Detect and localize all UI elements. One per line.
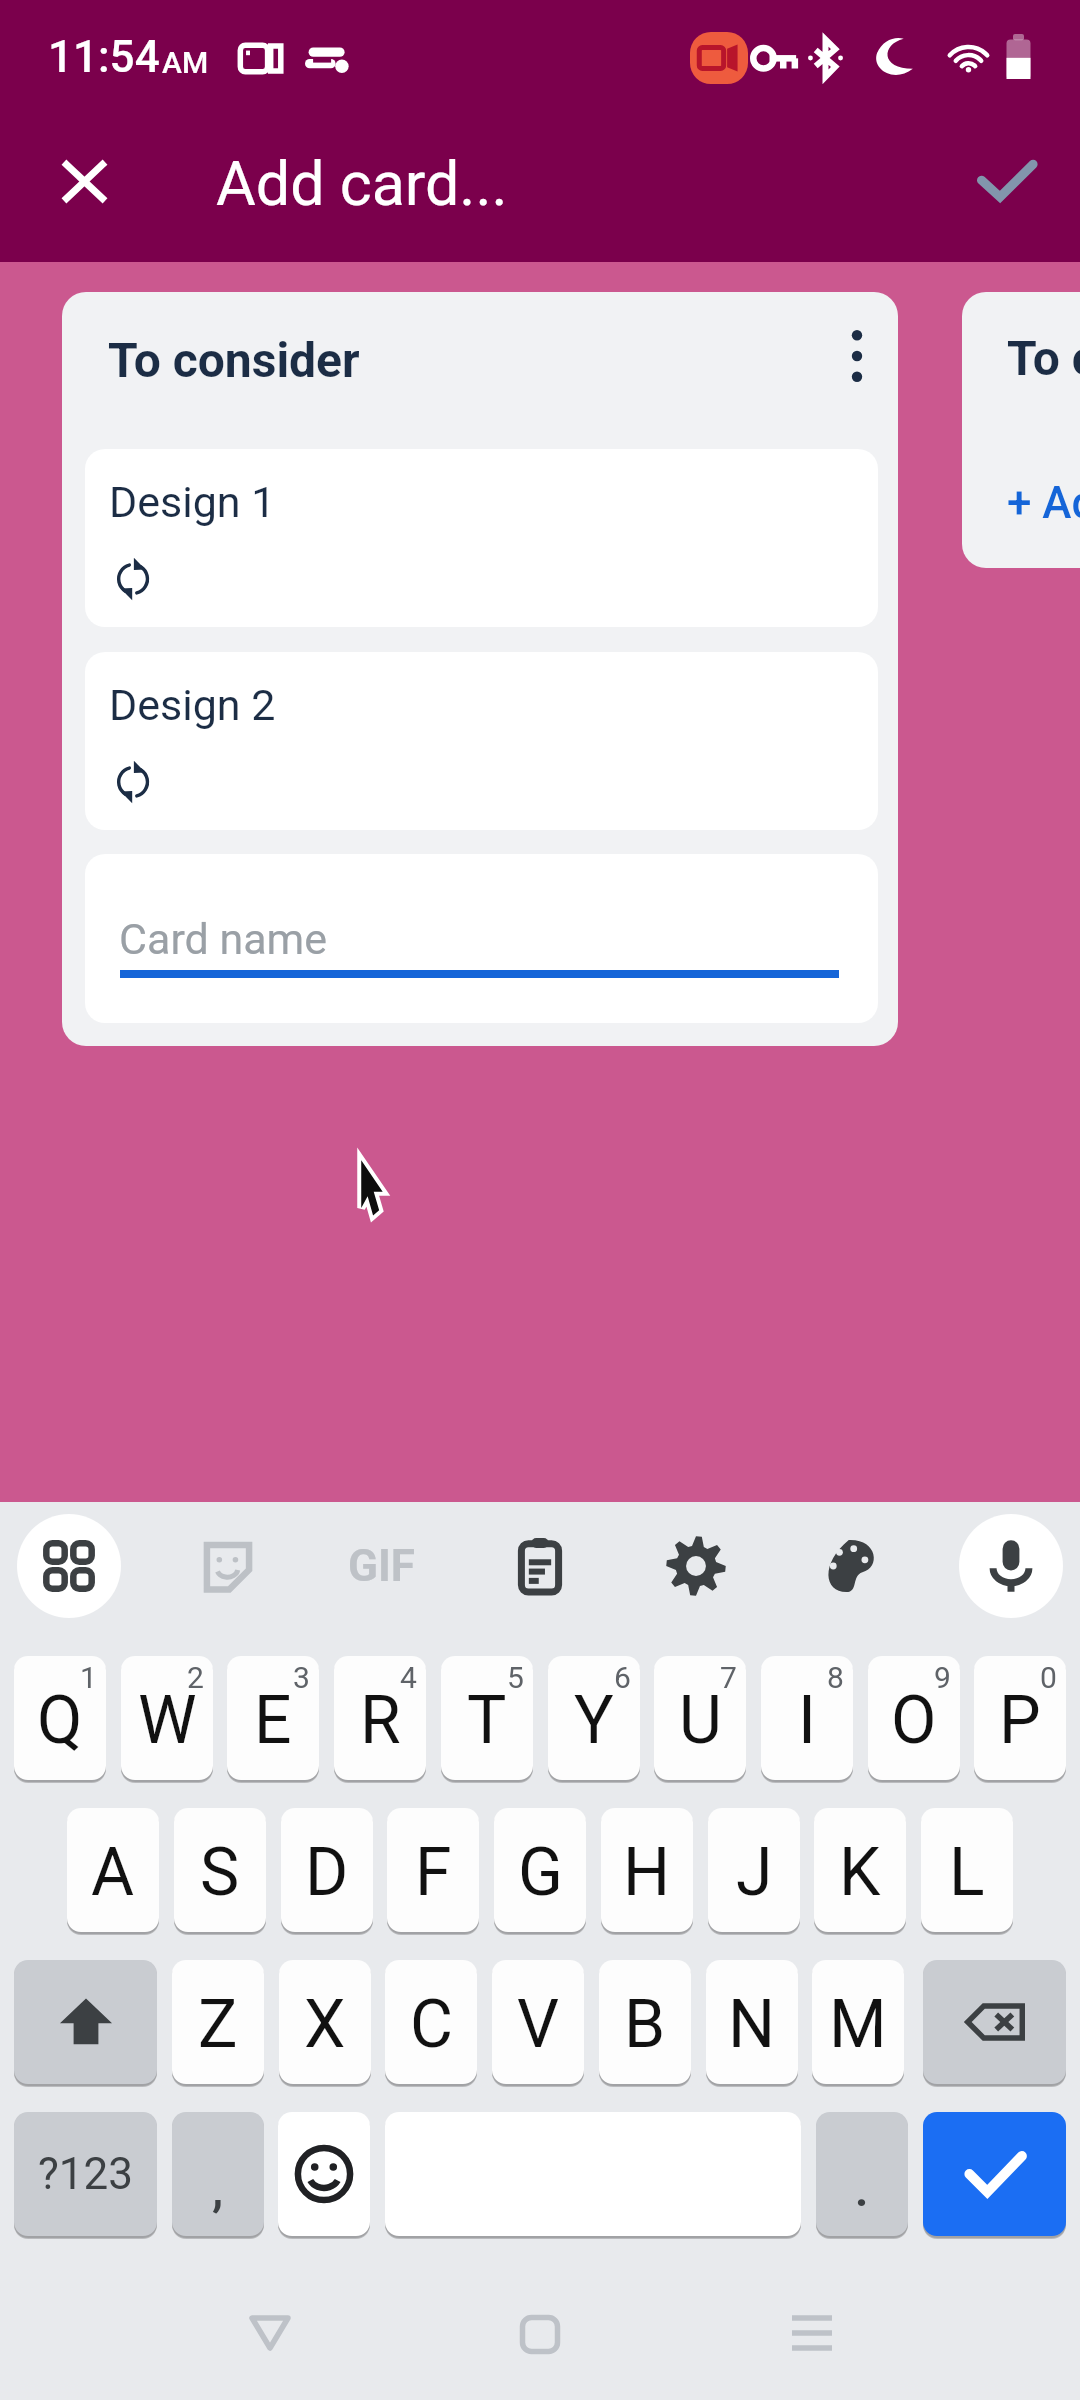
button[interactable]: Stickers	[158, 1514, 298, 1618]
staticText: C	[410, 1986, 453, 2063]
staticText: U	[679, 1682, 722, 1759]
staticText: + Add card	[1007, 477, 1080, 529]
staticText: J	[736, 1834, 773, 1911]
button[interactable]: S	[174, 1808, 266, 1932]
staticText: H	[623, 1834, 671, 1911]
staticText: 6	[614, 1660, 631, 1695]
staticText: ,	[212, 2163, 224, 2217]
staticText: X	[304, 1986, 346, 2063]
button[interactable]: Recents	[722, 2276, 902, 2390]
button[interactable]: T	[441, 1656, 533, 1780]
staticText: F	[415, 1834, 452, 1911]
button[interactable]: G	[494, 1808, 586, 1932]
button[interactable]: C	[385, 1960, 477, 2084]
button[interactable]: Z	[172, 1960, 264, 2084]
button[interactable]: D	[281, 1808, 373, 1932]
button[interactable]: Design 2	[85, 652, 878, 830]
staticText: K	[839, 1834, 881, 1911]
button[interactable]: K	[814, 1808, 906, 1932]
staticText: 11:54	[48, 31, 160, 83]
button[interactable]: Enter	[923, 2112, 1066, 2236]
staticText: Q	[37, 1682, 83, 1759]
button[interactable]: W	[121, 1656, 213, 1780]
button[interactable]: E	[227, 1656, 319, 1780]
button[interactable]: H	[601, 1808, 693, 1932]
staticText: 7	[720, 1660, 737, 1695]
staticText: L	[949, 1834, 985, 1911]
button[interactable]: Voice input	[959, 1514, 1063, 1618]
staticText: Y	[574, 1682, 614, 1759]
button[interactable]: Y	[548, 1656, 640, 1780]
staticText: 8	[827, 1660, 844, 1695]
staticText: E	[254, 1682, 292, 1759]
button[interactable]: Emoji	[278, 2112, 370, 2236]
staticText: W	[138, 1682, 197, 1759]
button[interactable]: Settings	[626, 1514, 766, 1618]
button[interactable]: R	[334, 1656, 426, 1780]
staticText: ?123	[38, 2148, 133, 2200]
staticText: Design 1	[109, 477, 276, 527]
button[interactable]: More options	[816, 315, 898, 397]
button[interactable]: A	[67, 1808, 159, 1932]
button[interactable]: .	[816, 2112, 908, 2236]
button[interactable]: Themes	[780, 1514, 920, 1618]
button[interactable]: Shift	[14, 1960, 157, 2084]
staticText: To consider	[108, 332, 360, 388]
button[interactable]: Backspace	[923, 1960, 1066, 2084]
button[interactable]: X	[279, 1960, 371, 2084]
button[interactable]: Design 1	[85, 449, 878, 627]
staticText: 0	[1040, 1660, 1057, 1695]
staticText: S	[200, 1834, 240, 1911]
staticText: O	[891, 1682, 937, 1759]
staticText: P	[999, 1682, 1041, 1759]
button[interactable]: ,	[172, 2112, 264, 2236]
staticText: Design 2	[109, 680, 276, 730]
staticText: M	[829, 1986, 887, 2063]
button[interactable]: B	[599, 1960, 691, 2084]
button[interactable]: F	[387, 1808, 479, 1932]
staticText: To consider	[1007, 330, 1080, 386]
staticText: R	[360, 1682, 401, 1759]
staticText: 4	[400, 1660, 417, 1695]
staticText: 5	[507, 1660, 524, 1695]
button[interactable]: GIF	[312, 1514, 452, 1618]
staticText: 2	[187, 1660, 204, 1695]
button[interactable]: Card name	[85, 854, 878, 1023]
staticText: A	[91, 1834, 135, 1911]
button[interactable]: Home	[450, 2277, 630, 2391]
staticText: Z	[198, 1986, 238, 2063]
button[interactable]: J	[708, 1808, 800, 1932]
button[interactable]: L	[921, 1808, 1013, 1932]
button[interactable]: Back	[180, 2276, 360, 2390]
button[interactable]: Close	[28, 125, 140, 237]
staticText: N	[728, 1986, 776, 2063]
staticText: Card name	[119, 914, 328, 964]
staticText: 3	[293, 1660, 310, 1695]
button[interactable]: I	[761, 1656, 853, 1780]
button[interactable]: Save	[951, 125, 1063, 237]
staticText: I	[798, 1682, 816, 1759]
button[interactable]: P	[974, 1656, 1066, 1780]
button[interactable]: Keyboard modes	[17, 1514, 121, 1618]
staticText: GIF	[348, 1540, 416, 1592]
button[interactable]: Q	[14, 1656, 106, 1780]
staticText: B	[624, 1986, 666, 2063]
staticText: Add card...	[216, 148, 508, 219]
button[interactable]: Clipboard	[470, 1514, 610, 1618]
button[interactable]: ?123	[14, 2112, 157, 2236]
staticText: T	[467, 1682, 507, 1759]
button[interactable]: U	[654, 1656, 746, 1780]
staticText: V	[517, 1986, 560, 2063]
staticText: 1	[80, 1660, 97, 1695]
button[interactable]: N	[706, 1960, 798, 2084]
button[interactable]: O	[868, 1656, 960, 1780]
staticText: 9	[934, 1660, 951, 1695]
staticText: D	[305, 1834, 349, 1911]
staticText: .	[855, 2163, 869, 2217]
staticText: AM	[162, 45, 209, 80]
staticText: G	[518, 1834, 563, 1911]
button[interactable]: M	[812, 1960, 904, 2084]
button[interactable]: V	[492, 1960, 584, 2084]
